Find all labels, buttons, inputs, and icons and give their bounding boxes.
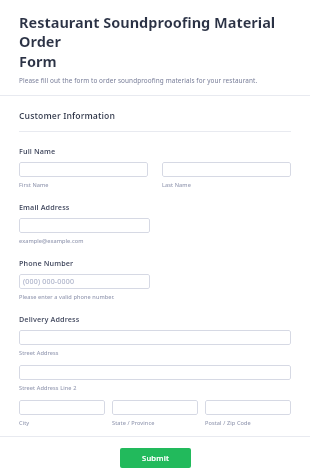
staticText: First Name — [19, 181, 49, 189]
staticText: Please fill out the form to order soundp… — [19, 76, 258, 85]
button[interactable]: Submit — [120, 448, 191, 468]
button[interactable] — [19, 330, 291, 345]
staticText: Delivery Address — [19, 314, 80, 324]
staticText: example@example.com — [19, 237, 84, 245]
staticText: Submit — [142, 453, 169, 463]
staticText: Last Name — [162, 181, 191, 189]
button[interactable] — [19, 218, 150, 233]
staticText: Postal / Zip Code — [205, 419, 251, 427]
button[interactable] — [205, 400, 291, 415]
staticText: City — [19, 419, 30, 427]
button[interactable] — [19, 365, 291, 380]
staticText: Street Address — [19, 349, 59, 357]
button[interactable] — [112, 400, 198, 415]
button[interactable] — [19, 400, 105, 415]
button[interactable] — [162, 162, 291, 177]
staticText: Restaurant Soundproofing Material Order — [19, 12, 291, 51]
button[interactable] — [19, 162, 148, 177]
staticText: State / Province — [112, 419, 155, 427]
staticText: Street Address Line 2 — [19, 384, 77, 392]
staticText: Email Address — [19, 202, 70, 212]
staticText: Form — [19, 51, 57, 71]
staticText: (000) 000-0000 — [23, 277, 75, 287]
button[interactable]: (000) 000-0000 — [19, 274, 150, 289]
staticText: Full Name — [19, 146, 56, 156]
staticText: Please enter a valid phone number. — [19, 293, 115, 301]
staticText: Customer Information — [19, 110, 116, 122]
staticText: Phone Number — [19, 258, 74, 268]
